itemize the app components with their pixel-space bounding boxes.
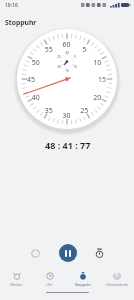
button[interactable]: Zurücksetzen xyxy=(23,241,47,265)
button[interactable]: Zeitschaltuhr xyxy=(100,272,134,288)
staticText: Uhr xyxy=(46,282,53,287)
button[interactable]: Runde xyxy=(87,241,111,265)
staticText: Stoppuhr xyxy=(75,282,91,287)
button[interactable]: Stoppuhr xyxy=(66,272,100,288)
button[interactable]: Pause xyxy=(59,244,77,262)
staticText: 48 : 41 : 77 xyxy=(45,139,91,151)
staticText: Zeitschaltuhr xyxy=(106,282,129,287)
staticText: Wecker xyxy=(10,282,23,287)
button[interactable]: Uhr xyxy=(33,272,66,288)
staticText: 19:16 xyxy=(5,2,18,9)
button[interactable]: Wecker xyxy=(0,272,33,288)
staticText: Stoppuhr xyxy=(5,18,37,27)
